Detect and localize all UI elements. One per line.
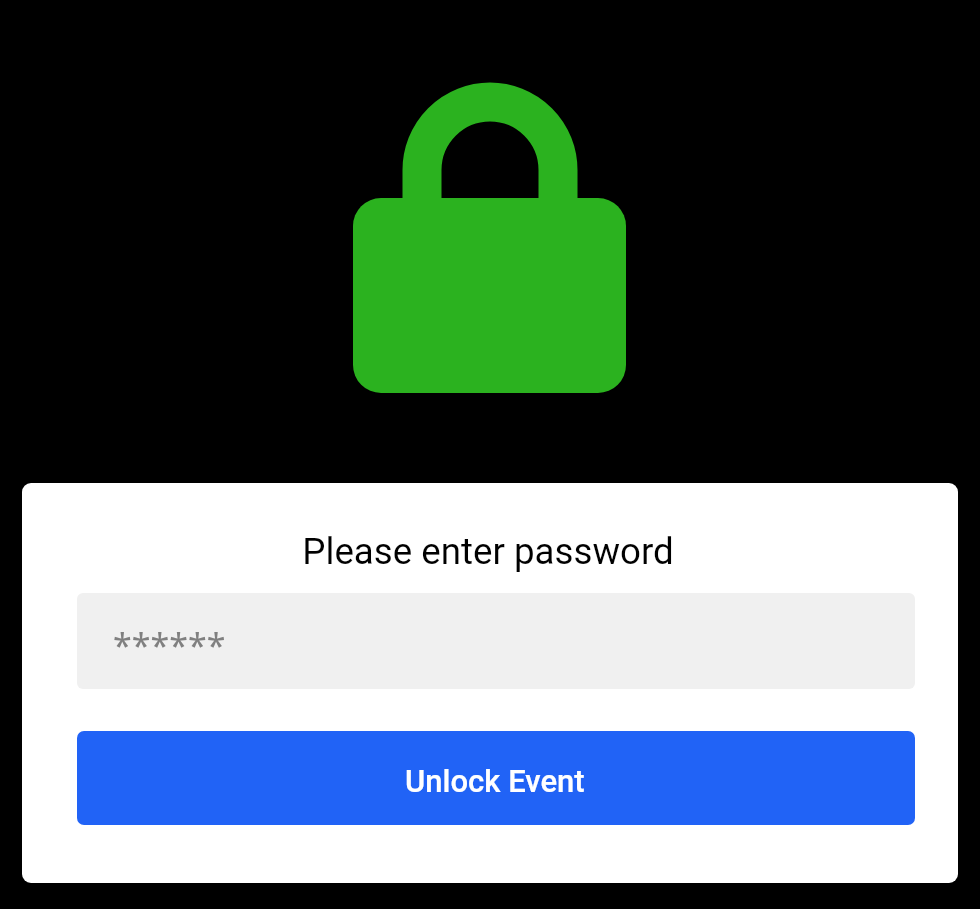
button[interactable]: Unlock Event: [77, 731, 915, 825]
staticText: Please enter password: [302, 530, 674, 573]
button[interactable]: ******: [77, 593, 915, 689]
other: Locked: [352, 80, 628, 396]
staticText: Unlock Event: [405, 763, 585, 799]
staticText: ******: [113, 622, 226, 668]
